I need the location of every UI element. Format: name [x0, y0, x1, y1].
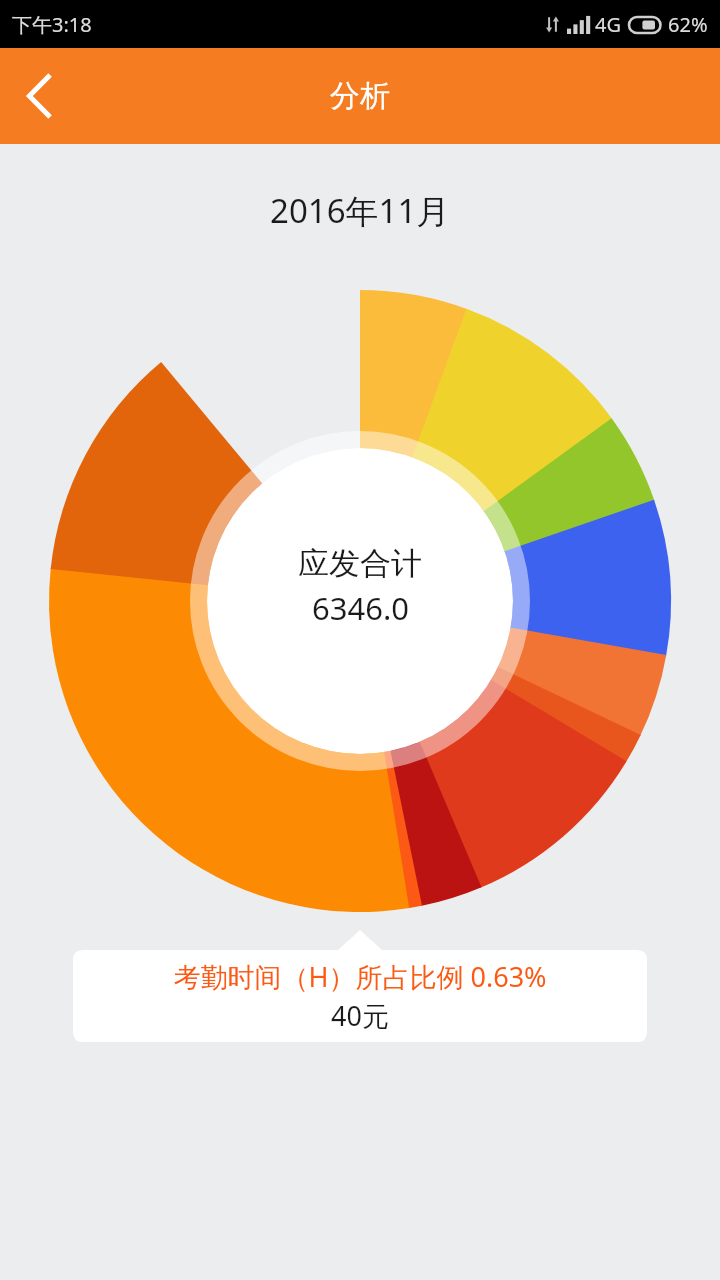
staticText: 下午3:18: [12, 11, 92, 38]
staticText: 2016年11月: [270, 188, 450, 233]
staticText: 4G: [595, 11, 621, 38]
staticText: 62%: [668, 11, 708, 38]
staticText: 40元: [331, 997, 389, 1034]
staticText: 应发合计: [298, 544, 422, 583]
staticText: 分析: [330, 77, 390, 115]
staticText: 考勤时间（H）所占比例 0.63%: [173, 958, 547, 995]
staticText: 6346.0: [312, 587, 409, 629]
button[interactable]: Back: [0, 56, 80, 136]
